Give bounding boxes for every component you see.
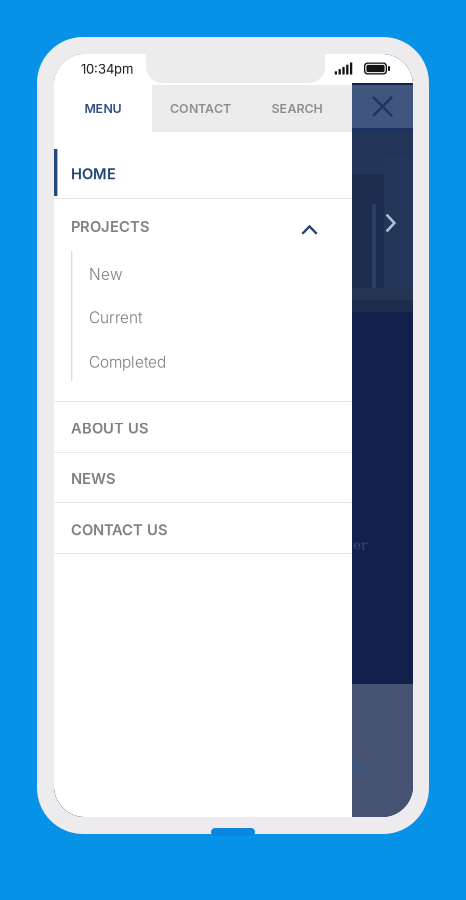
staticText: NEWS	[71, 470, 116, 487]
staticText: Completed	[89, 353, 166, 371]
staticText: Current	[89, 308, 143, 327]
staticText: MENU	[84, 101, 121, 116]
staticText: ABOUT US	[71, 419, 149, 437]
button[interactable]: NEWS	[54, 453, 352, 503]
staticText: 10:34pm	[81, 61, 133, 77]
button[interactable]: Close menu	[352, 85, 413, 128]
staticText: New	[89, 265, 122, 284]
staticText: HOME	[71, 165, 116, 183]
button[interactable]: MENU	[54, 85, 152, 132]
button[interactable]: SEARCH	[249, 85, 345, 132]
button[interactable]: Current	[54, 296, 352, 340]
button[interactable]: HOME	[54, 134, 352, 199]
staticText: PROJECTS	[71, 218, 150, 235]
button[interactable]: CONTACT	[152, 85, 249, 132]
button[interactable]: PROJECTS	[54, 199, 352, 402]
staticText: SEARCH	[271, 101, 322, 116]
staticText: er	[353, 537, 367, 553]
staticText: t	[354, 755, 361, 775]
button[interactable]: New	[54, 252, 352, 296]
button[interactable]: CONTACT US	[54, 503, 352, 554]
button[interactable]: ABOUT US	[54, 402, 352, 453]
button[interactable]: Completed	[54, 340, 352, 384]
staticText: CONTACT	[170, 101, 231, 116]
staticText: CONTACT US	[71, 521, 168, 539]
